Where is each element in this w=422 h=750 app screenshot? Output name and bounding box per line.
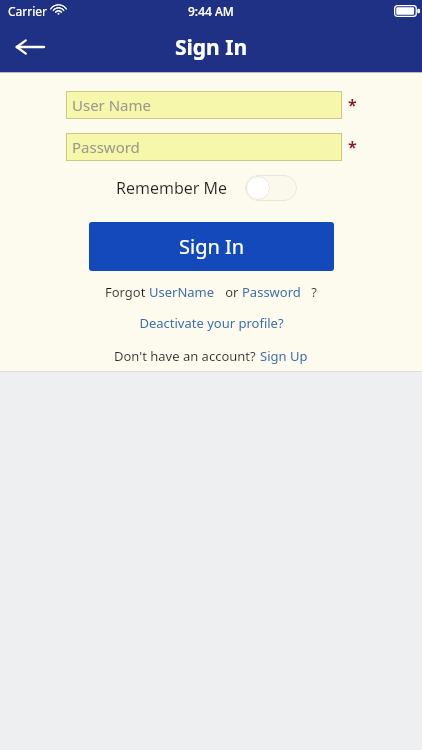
staticText: ?	[301, 283, 317, 301]
button[interactable]: Sign Up	[260, 347, 308, 365]
staticText: Forgot	[105, 283, 149, 301]
staticText: 9:44 AM	[188, 3, 234, 19]
button[interactable]: Sign In	[89, 222, 334, 271]
button[interactable]: User Name	[66, 91, 342, 119]
staticText: UserName	[149, 283, 215, 301]
button[interactable]: Remember Me toggle	[245, 175, 297, 201]
button[interactable]: Password	[66, 133, 342, 161]
staticText: Don't have an account?	[114, 347, 260, 365]
staticText: Deactivate your profile?	[139, 314, 284, 332]
staticText: User Name	[72, 95, 152, 115]
staticText: Sign Up	[260, 347, 308, 365]
staticText: Password	[242, 283, 301, 301]
staticText: Carrier	[8, 3, 48, 19]
staticText: or	[215, 283, 242, 301]
staticText: Sign In	[179, 233, 245, 260]
button[interactable]: Back	[8, 25, 52, 69]
staticText: *	[348, 136, 356, 158]
staticText: Sign In	[175, 33, 248, 62]
staticText: Password	[72, 137, 140, 157]
staticText: *	[348, 94, 356, 116]
staticText: Remember Me	[116, 177, 228, 199]
button[interactable]: Password	[242, 283, 301, 301]
button[interactable]: Deactivate your profile?	[139, 314, 284, 332]
button[interactable]: UserName	[149, 283, 215, 301]
